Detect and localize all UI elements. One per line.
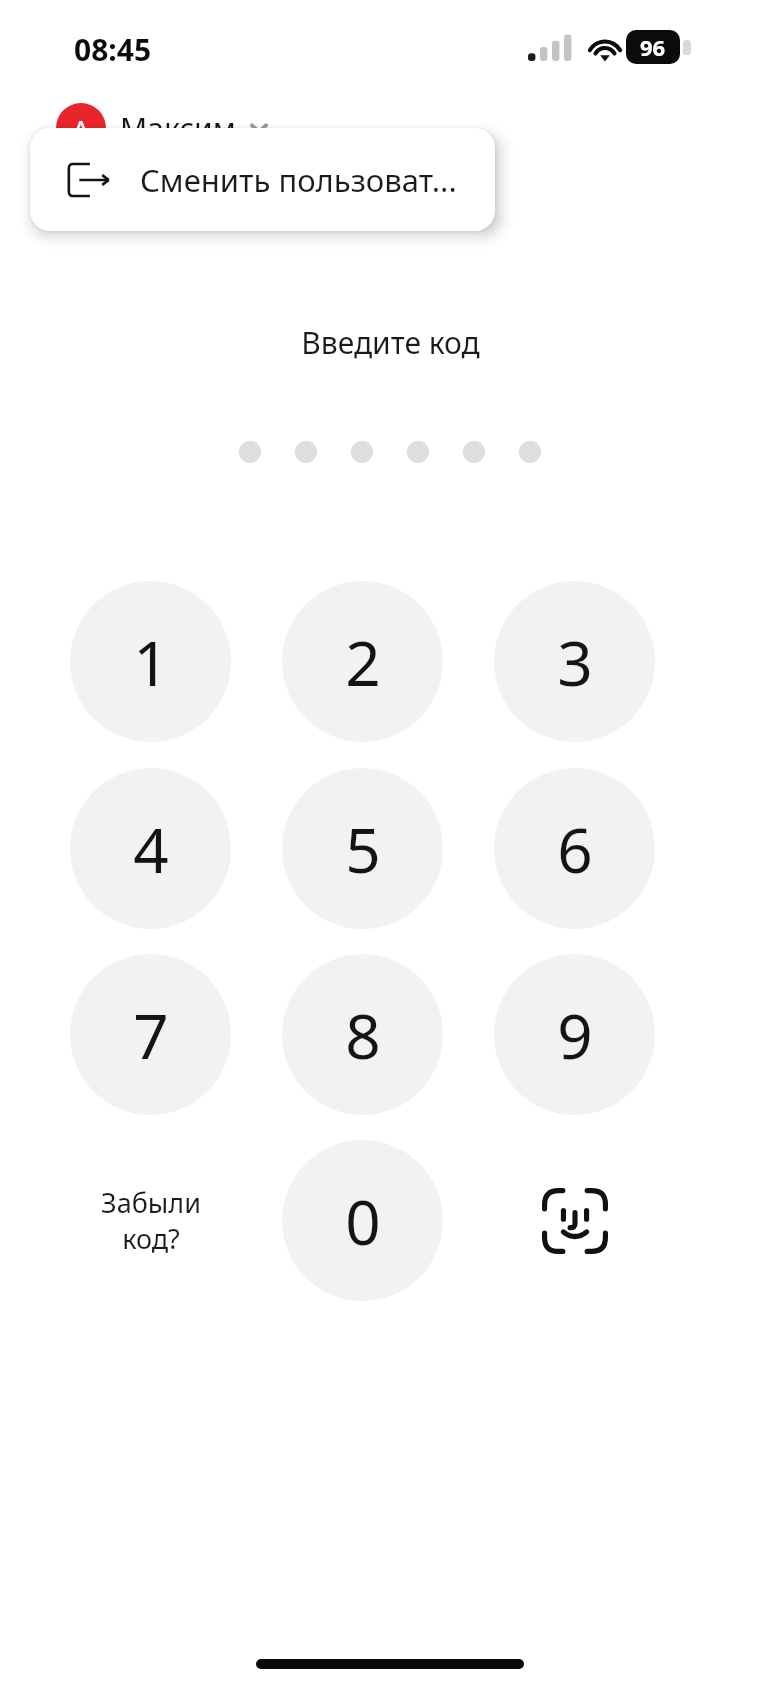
button[interactable]: 9: [494, 954, 655, 1115]
staticText: 08:45: [74, 29, 152, 70]
staticText: 8: [345, 993, 381, 1077]
button[interactable]: А: [56, 101, 270, 155]
staticText: 1: [133, 620, 169, 704]
staticText: 9: [557, 993, 593, 1077]
button[interactable]: Сменить пользоват...: [30, 128, 495, 231]
staticText: Максим: [120, 108, 236, 149]
staticText: 96: [640, 32, 666, 62]
button[interactable]: Забыли код?: [70, 1140, 231, 1301]
button[interactable]: 8: [282, 954, 443, 1115]
staticText: 0: [345, 1179, 381, 1263]
staticText: 5: [345, 807, 381, 891]
staticText: А: [73, 112, 89, 145]
button[interactable]: 2: [282, 581, 443, 742]
button[interactable]: 4: [70, 768, 231, 929]
staticText: 7: [133, 993, 169, 1077]
staticText: Забыли код?: [101, 1184, 201, 1257]
staticText: 2: [345, 620, 381, 704]
button[interactable]: 7: [70, 954, 231, 1115]
button[interactable]: 0: [282, 1140, 443, 1301]
staticText: 6: [557, 807, 593, 891]
staticText: 4: [133, 807, 169, 891]
staticText: Введите код: [301, 322, 480, 363]
staticText: 3: [557, 620, 593, 704]
button[interactable]: 6: [494, 768, 655, 929]
button[interactable]: Face ID: [494, 1140, 655, 1301]
button[interactable]: 3: [494, 581, 655, 742]
button[interactable]: 5: [282, 768, 443, 929]
button[interactable]: 1: [70, 581, 231, 742]
staticText: Сменить пользоват...: [140, 159, 457, 201]
